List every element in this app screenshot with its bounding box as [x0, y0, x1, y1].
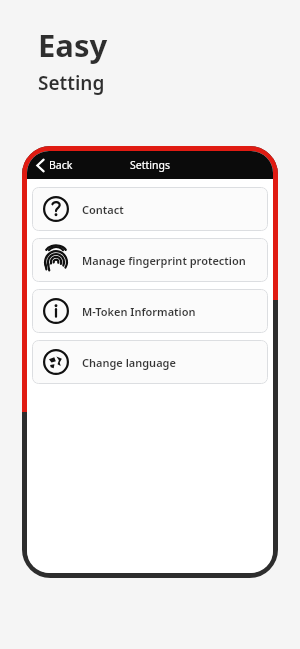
button[interactable]: Change language	[32, 340, 268, 384]
staticText: M-Token Information	[82, 304, 196, 319]
staticText: Contact	[82, 202, 124, 217]
button[interactable]: Back	[34, 154, 75, 176]
button[interactable]: Manage fingerprint protection	[32, 238, 268, 282]
staticText: Settings	[130, 158, 170, 172]
button[interactable]: M-Token Information	[32, 289, 268, 333]
staticText: Setting	[38, 70, 105, 96]
other: Contact	[43, 196, 69, 222]
staticText: Change language	[82, 355, 176, 370]
other: Manage fingerprint protection	[43, 247, 69, 273]
other: Change language	[43, 349, 69, 375]
other: M-Token Information	[43, 298, 69, 324]
staticText: Easy	[38, 24, 108, 66]
staticText: Back	[49, 158, 73, 172]
staticText: Manage fingerprint protection	[82, 253, 246, 268]
button[interactable]: Contact	[32, 187, 268, 231]
